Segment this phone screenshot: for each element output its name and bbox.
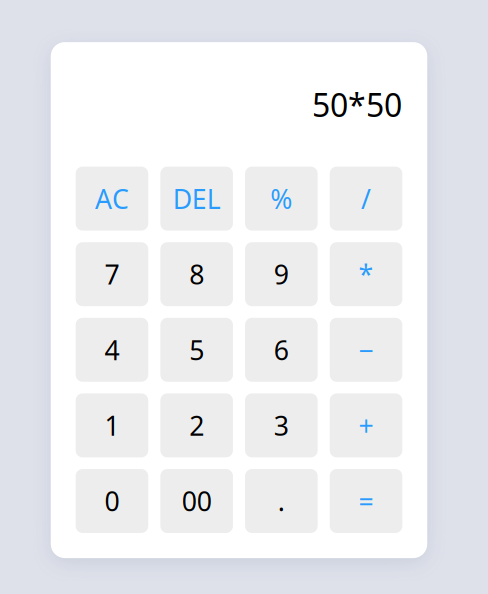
- staticText: 3: [274, 408, 289, 443]
- button[interactable]: Plus: [330, 393, 402, 457]
- button[interactable]: 5: [160, 318, 233, 382]
- staticText: 0: [104, 483, 119, 519]
- button[interactable]: Minus: [330, 318, 402, 382]
- button[interactable]: 00: [160, 469, 233, 533]
- staticText: *: [359, 256, 374, 292]
- button[interactable]: Divide: [330, 167, 402, 231]
- button[interactable]: Percent: [245, 167, 318, 231]
- staticText: 7: [104, 256, 119, 292]
- staticText: −: [359, 332, 374, 367]
- button[interactable]: All clear: [76, 167, 148, 231]
- button[interactable]: 6: [245, 318, 318, 382]
- button[interactable]: 3: [245, 393, 318, 457]
- staticText: AC: [95, 181, 129, 216]
- staticText: 50*50: [312, 83, 402, 126]
- staticText: 1: [104, 408, 119, 443]
- button[interactable]: Decimal point: [245, 469, 318, 533]
- button[interactable]: Delete: [160, 167, 233, 231]
- button[interactable]: Multiply: [330, 242, 402, 306]
- staticText: /: [361, 181, 371, 216]
- staticText: =: [359, 483, 374, 519]
- staticText: 6: [274, 332, 289, 367]
- staticText: 9: [274, 256, 289, 292]
- staticText: +: [359, 408, 374, 443]
- button[interactable]: 8: [160, 242, 233, 306]
- staticText: DEL: [173, 181, 221, 216]
- staticText: 2: [189, 408, 204, 443]
- staticText: 4: [104, 332, 119, 367]
- button[interactable]: 2: [160, 393, 233, 457]
- button[interactable]: 9: [245, 242, 318, 306]
- staticText: 8: [189, 256, 204, 292]
- staticText: 00: [182, 483, 212, 519]
- staticText: .: [278, 483, 285, 519]
- button[interactable]: 7: [76, 242, 148, 306]
- staticText: 5: [189, 332, 204, 367]
- button[interactable]: 1: [76, 393, 148, 457]
- button[interactable]: 0: [76, 469, 148, 533]
- button[interactable]: 4: [76, 318, 148, 382]
- button[interactable]: Equals: [330, 469, 402, 533]
- staticText: %: [270, 181, 292, 216]
